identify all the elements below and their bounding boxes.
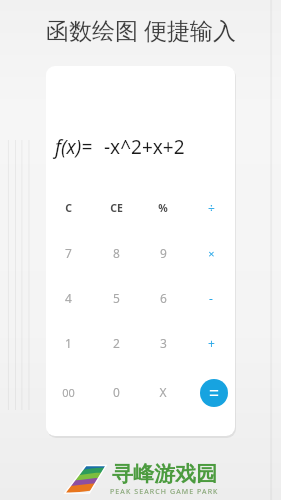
staticText: 函数绘图 便捷输入	[46, 14, 236, 45]
button[interactable]: 00	[48, 377, 88, 407]
staticText: 00	[62, 385, 75, 400]
button[interactable]: Equals	[200, 379, 228, 407]
staticText: +	[208, 335, 215, 351]
staticText: -	[209, 290, 213, 306]
staticText: 1	[65, 335, 72, 351]
staticText: %	[158, 201, 168, 215]
button[interactable]: CE	[96, 193, 136, 223]
button[interactable]: 9	[143, 238, 183, 268]
staticText: f(x)=	[55, 134, 93, 160]
staticText: 5	[113, 290, 120, 306]
staticText: C	[65, 201, 72, 215]
button[interactable]: 0	[96, 377, 136, 407]
button[interactable]: 5	[96, 283, 136, 313]
staticText: PEAK SEARCH GAME PARK	[110, 487, 219, 497]
button[interactable]: X	[143, 377, 183, 407]
button[interactable]: 4	[48, 283, 88, 313]
staticText: 6	[160, 290, 167, 306]
button[interactable]: +	[191, 328, 231, 358]
staticText: 3	[160, 335, 167, 351]
button[interactable]: 6	[143, 283, 183, 313]
staticText: 8	[113, 245, 120, 261]
staticText: ÷	[208, 200, 215, 216]
staticText: 7	[65, 245, 72, 261]
staticText: ×	[208, 246, 215, 261]
button[interactable]: 1	[48, 328, 88, 358]
button[interactable]: 2	[96, 328, 136, 358]
staticText: -x^2+x+2	[104, 134, 185, 160]
button[interactable]: ÷	[191, 193, 231, 223]
staticText: 4	[65, 290, 72, 306]
button[interactable]: 7	[48, 238, 88, 268]
button[interactable]: 8	[96, 238, 136, 268]
staticText: 2	[113, 335, 120, 351]
staticText: X	[159, 384, 167, 400]
staticText: 寻峰游戏园	[112, 461, 217, 487]
button[interactable]: ×	[191, 238, 231, 268]
staticText: 0	[113, 384, 120, 400]
staticText: CE	[110, 201, 123, 215]
button[interactable]: 3	[143, 328, 183, 358]
staticText: 9	[160, 245, 167, 261]
button[interactable]: %	[143, 193, 183, 223]
button[interactable]: C	[48, 193, 88, 223]
button[interactable]: f(x)=	[55, 134, 235, 160]
button[interactable]: -	[191, 283, 231, 313]
